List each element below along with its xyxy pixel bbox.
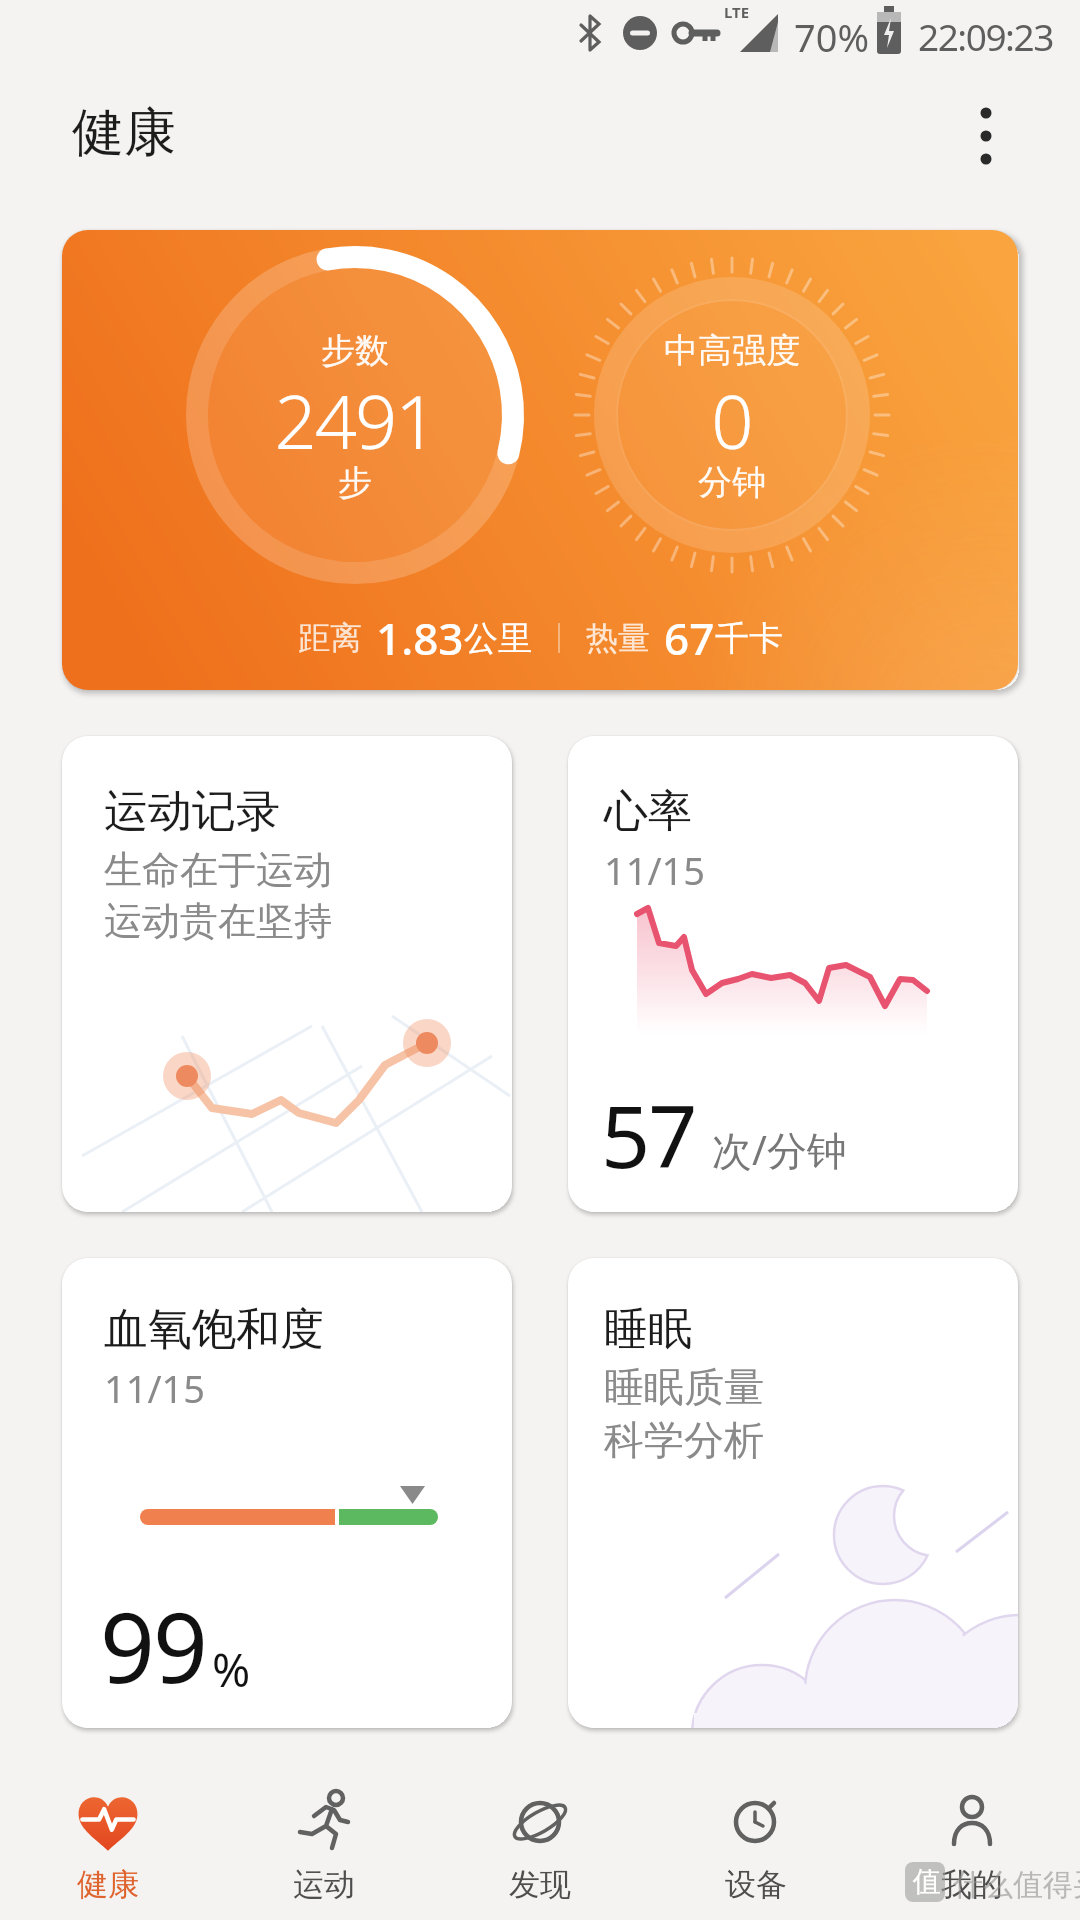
staticText: 22:09:23 [918,11,1053,61]
staticText: 70% [794,11,870,63]
staticText: 生命在于运动 运动贵在坚持 [104,846,332,946]
staticText: 血氧饱和度 [104,1302,324,1357]
staticText: 步数 [321,329,389,372]
button[interactable]: 步数 [62,230,1018,690]
staticText: 11/15 [604,844,706,896]
button[interactable] [960,95,1010,175]
button[interactable]: 血氧饱和度 [62,1258,512,1728]
staticText: 千卡 [715,617,783,660]
staticText: % [212,1638,251,1701]
staticText: 步 [338,461,372,504]
staticText: 57 [601,1076,696,1193]
button[interactable]: 运动记录 [62,736,512,1212]
staticText: 值 [913,1864,941,1899]
button[interactable]: 我的 [864,1772,1080,1920]
staticText: 睡眠质量 科学分析 [604,1362,764,1466]
staticText: 99 [100,1580,206,1711]
staticText: 设备 [725,1865,787,1904]
staticText: 什么值得买 [953,1866,1080,1904]
staticText: 公里 [464,617,532,660]
button[interactable]: 运动 [216,1772,432,1920]
staticText: 热量 [586,618,650,658]
staticText: 67 [664,608,715,668]
button[interactable]: 健康 [0,1772,216,1920]
staticText: 1.83 [376,608,464,668]
staticText: 健康 [77,1865,139,1904]
button[interactable]: 发现 [432,1772,648,1920]
staticText: 运动 [293,1865,355,1904]
button[interactable]: 睡眠 [568,1258,1018,1728]
staticText: 发现 [509,1865,571,1904]
staticText: 心率 [604,784,692,839]
staticText: 健康 [72,100,176,166]
staticText: 11/15 [104,1362,206,1414]
staticText: 2491 [274,370,436,462]
staticText: 运动记录 [104,784,280,839]
button[interactable]: 设备 [648,1772,864,1920]
staticText: 0 [711,370,754,462]
staticText: 睡眠 [604,1302,692,1357]
staticText: 次/分钟 [712,1122,847,1177]
staticText: LTE [724,2,750,22]
staticText: 距离 [298,618,362,658]
staticText: 分钟 [698,461,766,504]
staticText: 中高强度 [664,329,800,372]
button[interactable]: 心率 [568,736,1018,1212]
staticText: 我的 [941,1865,1003,1904]
